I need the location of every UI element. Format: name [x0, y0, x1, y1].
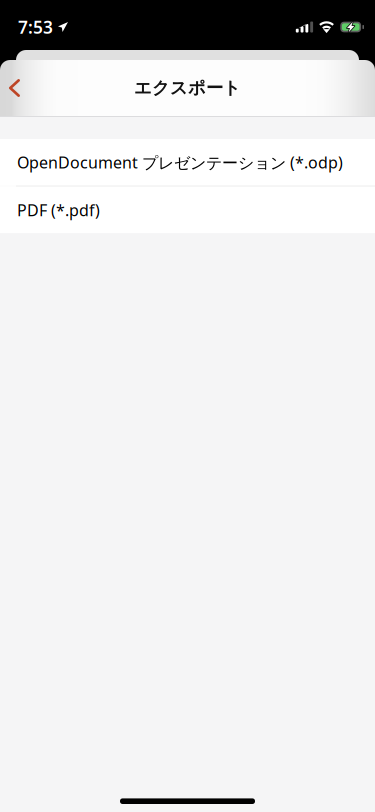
staticText: PDF (*.pdf): [17, 199, 100, 221]
button[interactable]: PDF (*.pdf): [0, 187, 375, 233]
button[interactable]: OpenDocument プレゼンテーション (*.odp): [0, 139, 375, 185]
staticText: OpenDocument プレゼンテーション (*.odp): [17, 152, 343, 173]
button[interactable]: Back: [0, 66, 33, 110]
staticText: 7:53: [18, 15, 53, 38]
staticText: エクスポート: [134, 77, 241, 99]
